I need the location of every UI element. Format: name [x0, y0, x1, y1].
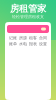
staticText: 合同 — [39, 35, 47, 40]
button[interactable]: 合同 — [38, 36, 47, 40]
button[interactable]: 水电 — [18, 42, 27, 46]
staticText: 设置 — [39, 41, 47, 46]
staticText: 轻松管理房租收支 — [12, 14, 44, 19]
button[interactable]: 记账 — [8, 36, 17, 40]
button[interactable] — [7, 25, 49, 33]
button[interactable]: 设置 — [38, 42, 47, 46]
button[interactable]: 报表 — [28, 42, 37, 46]
button[interactable]: 账单 — [8, 42, 17, 46]
staticText: 报表 — [29, 41, 37, 46]
staticText: 房租管家 — [10, 3, 46, 14]
staticText: 房源 — [19, 35, 27, 40]
staticText: 记账 — [9, 35, 17, 40]
staticText: 水电 — [19, 41, 27, 46]
staticText: 账单 — [9, 41, 17, 46]
button[interactable]: 房源 — [18, 36, 27, 40]
button[interactable]: 租客 — [28, 36, 37, 40]
staticText: 租客 — [29, 35, 37, 40]
